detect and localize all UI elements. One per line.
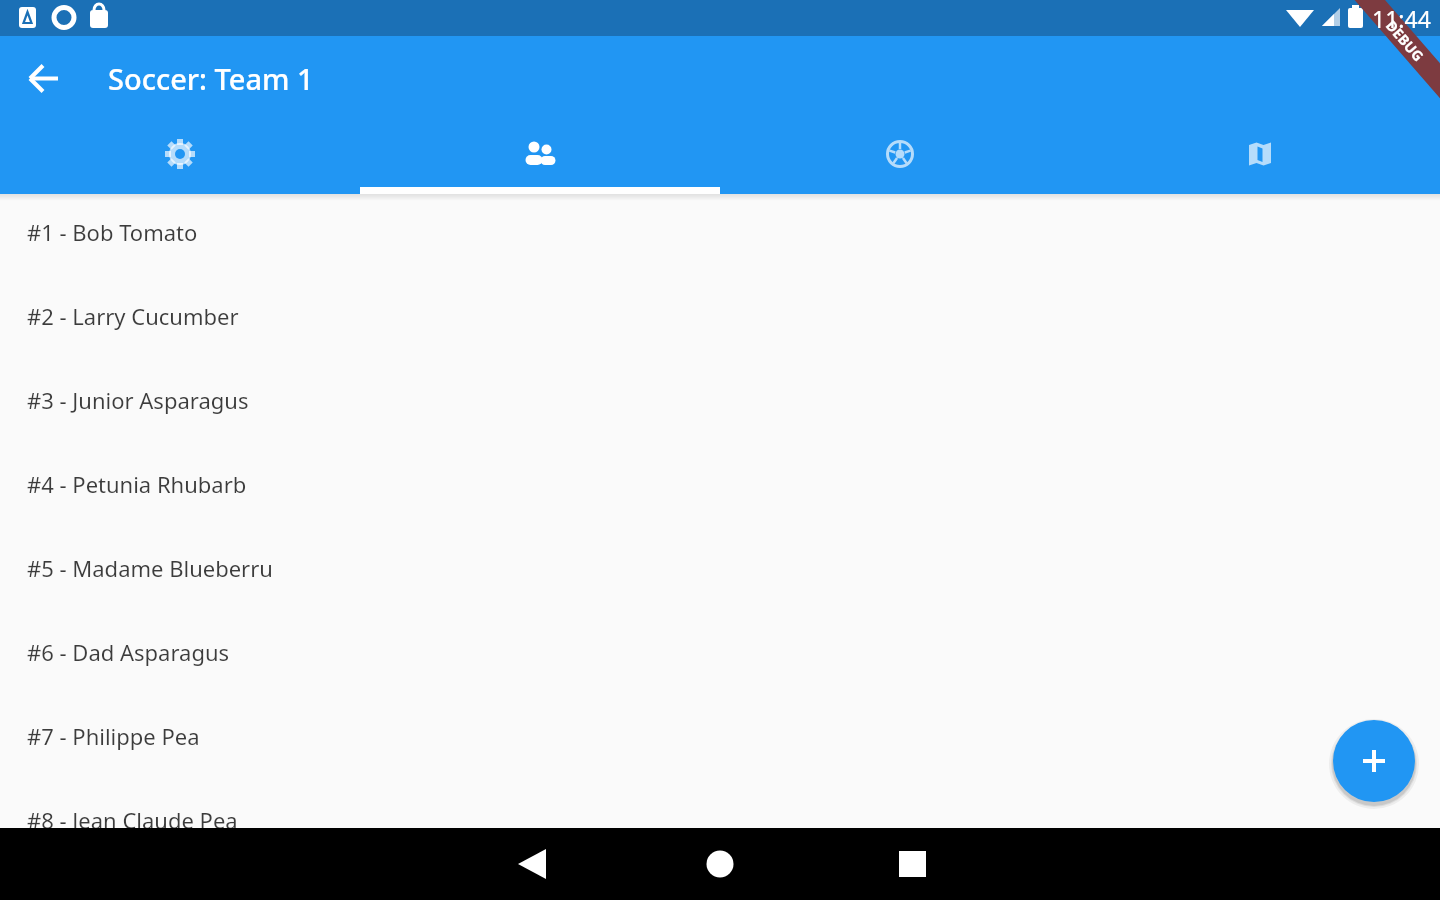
staticText: #3 - Junior Asparagus xyxy=(27,385,249,415)
staticText: #8 - Jean Claude Pea xyxy=(27,805,238,835)
staticText: #2 - Larry Cucumber xyxy=(27,301,239,331)
staticText: DEBUG xyxy=(1382,16,1429,66)
staticText: Soccer: Team 1 xyxy=(108,59,314,98)
staticText: #7 - Philippe Pea xyxy=(27,721,200,751)
staticText: #4 - Petunia Rhubarb xyxy=(27,469,247,499)
staticText: #5 - Madame Blueberru xyxy=(27,553,273,583)
staticText: #1 - Bob Tomato xyxy=(27,217,198,247)
staticText: 11:44 xyxy=(1372,3,1431,34)
staticText: #6 - Dad Asparagus xyxy=(27,637,230,667)
